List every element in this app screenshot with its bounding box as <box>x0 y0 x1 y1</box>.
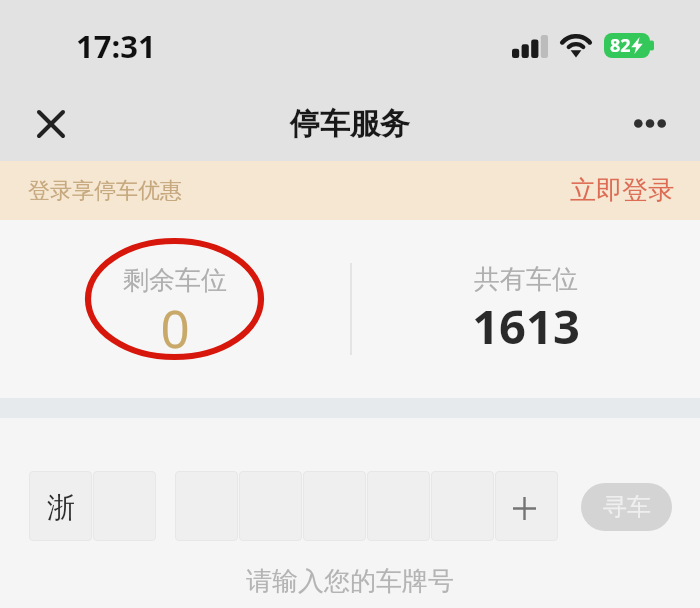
staticText: 0 <box>160 293 190 362</box>
staticText: 82 <box>610 33 631 58</box>
button[interactable]: Close <box>22 95 79 152</box>
staticText: 登录享停车优惠 <box>28 177 182 205</box>
staticText: 17:31 <box>76 25 156 67</box>
button[interactable]: Add vehicle <box>495 471 558 541</box>
button[interactable]: 登录享停车优惠 <box>0 171 194 211</box>
staticText: 请输入您的车牌号 <box>246 565 454 598</box>
staticText: 1613 <box>472 294 580 358</box>
button[interactable]: 寻车 <box>581 483 672 531</box>
button[interactable]: 浙 <box>29 471 92 541</box>
button[interactable]: More options <box>621 93 678 150</box>
staticText: 寻车 <box>603 492 651 522</box>
button[interactable]: 立即登录 <box>558 169 700 212</box>
staticText: 停车服务 <box>290 105 410 143</box>
staticText: 立即登录 <box>570 174 674 207</box>
staticText: 浙 <box>47 490 75 525</box>
staticText: 剩余车位 <box>123 264 227 297</box>
staticText: 共有车位 <box>474 263 578 296</box>
